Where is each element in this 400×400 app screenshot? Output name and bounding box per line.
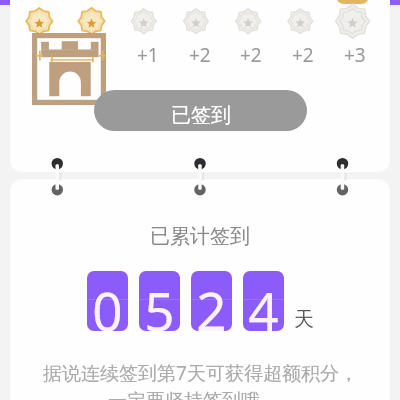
staticText: +2 — [292, 42, 314, 66]
staticText: 已签到 — [171, 103, 231, 128]
staticText: 5 — [139, 274, 180, 331]
staticText: 一定要坚持签到哦 — [108, 389, 260, 400]
staticText: 已累计签到 — [150, 224, 250, 249]
staticText: 4 — [243, 274, 284, 331]
staticText: 0 — [87, 274, 128, 331]
staticText: +2 — [189, 42, 211, 66]
staticText: 据说连续签到第7天可获得超额积分， — [43, 360, 358, 384]
other: Castle badge — [32, 33, 106, 105]
staticText: +3 — [344, 42, 366, 66]
button[interactable]: 已签到 — [94, 90, 307, 131]
staticText: +2 — [240, 42, 262, 66]
staticText: 2 — [191, 274, 232, 331]
staticText: 天 — [294, 307, 314, 332]
staticText: +1 — [137, 42, 159, 66]
